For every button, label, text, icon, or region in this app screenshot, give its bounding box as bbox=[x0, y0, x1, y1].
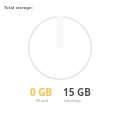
other: Storage usage chart bbox=[28, 16, 92, 80]
staticText: 0% used bbox=[36, 99, 48, 103]
staticText: 0 GB bbox=[30, 85, 53, 99]
staticText: 15 GB bbox=[63, 85, 91, 99]
staticText: total storage bbox=[64, 99, 81, 103]
staticText: Total storage: bbox=[4, 5, 33, 11]
